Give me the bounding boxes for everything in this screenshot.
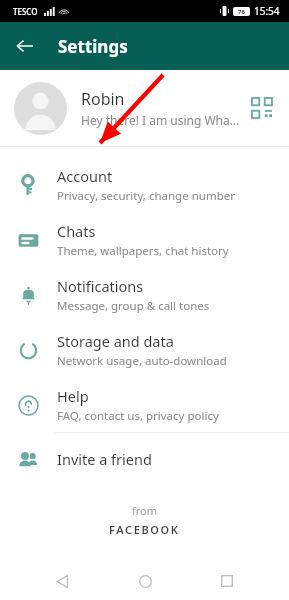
staticText: Robin (81, 88, 125, 110)
button[interactable]: Chats (0, 212, 289, 267)
staticText: 15:54 (254, 4, 280, 18)
button[interactable]: Storage and data (0, 322, 289, 377)
staticText: from (132, 503, 158, 518)
button[interactable]: Recent apps (207, 562, 247, 600)
button[interactable]: QR code (249, 95, 275, 121)
staticText: FAQ, contact us, privacy policy (57, 408, 219, 424)
staticText: Notifications (57, 276, 144, 296)
staticText: Settings (58, 35, 128, 58)
staticText: Hey there! I am using WhatsA… (81, 112, 241, 128)
button[interactable]: Help (0, 377, 289, 432)
button[interactable]: Account (0, 157, 289, 212)
button[interactable]: Robin (0, 70, 289, 146)
staticText: Network usage, auto-download (57, 353, 227, 369)
staticText: Theme, wallpapers, chat history (57, 243, 229, 259)
staticText: Message, group & call tones (57, 298, 210, 314)
staticText: Storage and data (57, 331, 174, 351)
button[interactable]: Home (125, 562, 165, 600)
button[interactable]: Notifications (0, 267, 289, 322)
staticText: Invite a friend (57, 449, 152, 469)
button[interactable]: Back (8, 29, 42, 63)
button[interactable]: Back (42, 562, 82, 600)
staticText: FACEBOOK (109, 522, 180, 537)
staticText: TESCO (13, 6, 38, 17)
staticText: Privacy, security, change number (57, 188, 235, 204)
staticText: Help (57, 386, 89, 406)
staticText: Account (57, 166, 113, 186)
button[interactable]: Invite a friend (0, 433, 289, 485)
staticText: 76 (238, 8, 245, 16)
staticText: Chats (57, 221, 96, 241)
